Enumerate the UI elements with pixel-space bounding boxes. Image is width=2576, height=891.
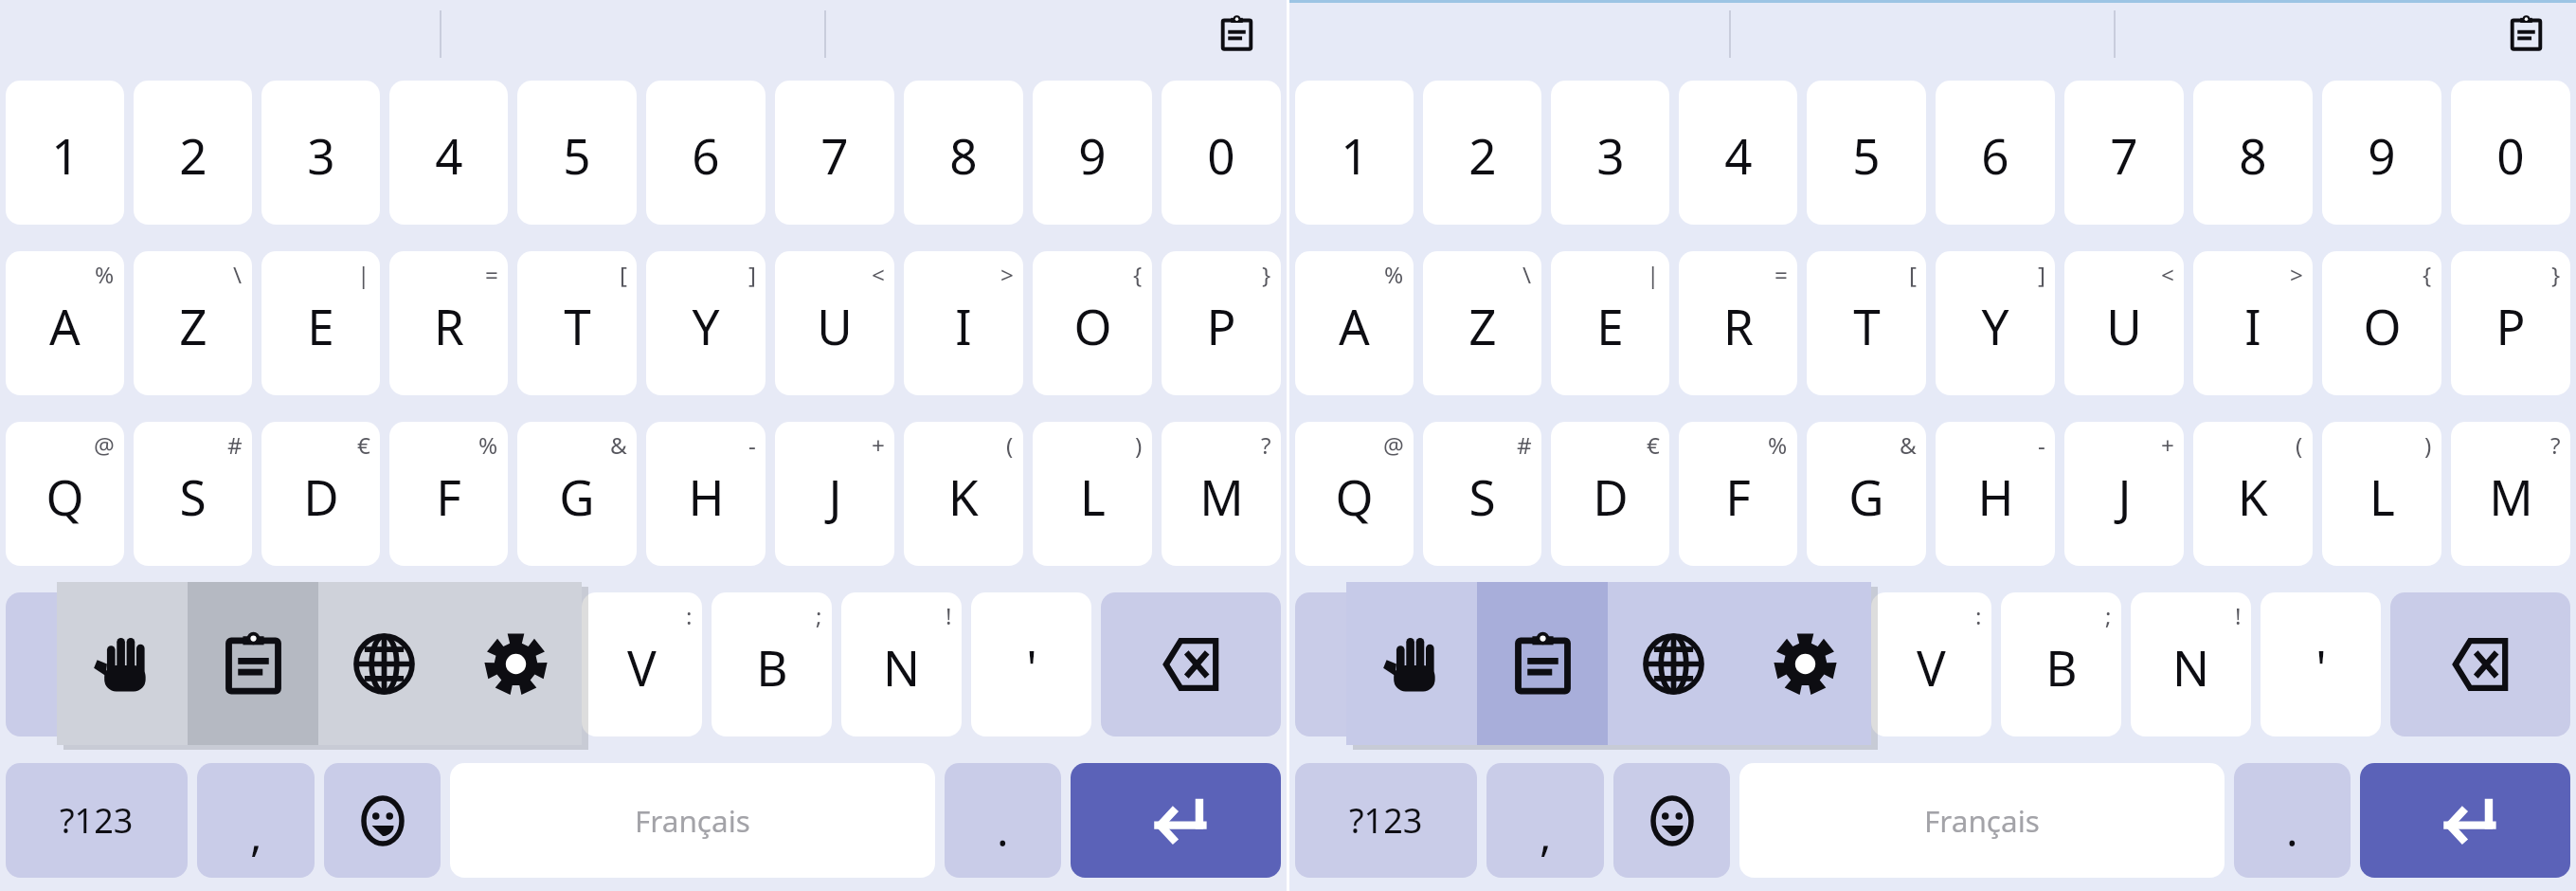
button[interactable]: 9 (2322, 81, 2441, 225)
button[interactable]: P (1162, 251, 1281, 395)
button[interactable]: 4 (389, 81, 508, 225)
button[interactable]: ' (971, 592, 1091, 736)
button[interactable]: M (2451, 422, 2570, 566)
button[interactable]: 3 (1551, 81, 1669, 225)
button[interactable]: Z (134, 251, 252, 395)
button[interactable]: I (904, 251, 1023, 395)
button[interactable]: H (1936, 422, 2055, 566)
button[interactable]: 8 (2193, 81, 2313, 225)
button[interactable]: Emoji (1613, 763, 1730, 878)
button[interactable]: O (2322, 251, 2441, 395)
button[interactable]: 7 (775, 81, 894, 225)
button[interactable]: V (582, 592, 702, 736)
button[interactable]: Q (6, 422, 124, 566)
button[interactable]: 1 (6, 81, 124, 225)
button[interactable]: Y (1936, 251, 2055, 395)
button[interactable]: Settings (450, 582, 582, 745)
button[interactable]: Languages (318, 582, 450, 745)
button[interactable]: F (1679, 422, 1797, 566)
button[interactable]: N (2131, 592, 2251, 736)
button[interactable]: Shift (1295, 592, 1474, 736)
button[interactable]: C (452, 592, 572, 736)
button[interactable]: Comma (1486, 763, 1604, 878)
button[interactable]: O (1033, 251, 1152, 395)
button[interactable]: Shift (6, 592, 185, 736)
button[interactable]: W (1484, 592, 1603, 736)
button[interactable]: K (2193, 422, 2313, 566)
button[interactable]: X (323, 592, 442, 736)
button[interactable]: X (1612, 592, 1732, 736)
button[interactable]: G (517, 422, 637, 566)
button[interactable]: G (1807, 422, 1926, 566)
button[interactable]: 6 (1936, 81, 2055, 225)
button[interactable]: Français (450, 763, 935, 878)
button[interactable]: T (517, 251, 637, 395)
button[interactable]: I (2193, 251, 2313, 395)
button[interactable]: ' (2261, 592, 2381, 736)
button[interactable]: W (194, 592, 314, 736)
button[interactable]: 7 (2064, 81, 2184, 225)
button[interactable]: Settings (1739, 582, 1871, 745)
button[interactable]: U (2064, 251, 2184, 395)
button[interactable]: Period (2234, 763, 2351, 878)
button[interactable]: F (389, 422, 508, 566)
button[interactable]: A (1295, 251, 1414, 395)
button[interactable]: One-handed mode (57, 582, 188, 745)
button[interactable]: Français (1739, 763, 2225, 878)
button[interactable]: Comma (197, 763, 315, 878)
button[interactable]: E (1551, 251, 1669, 395)
button[interactable]: J (775, 422, 894, 566)
button[interactable]: T (1807, 251, 1926, 395)
button[interactable]: ?123 (6, 763, 188, 878)
button[interactable]: 0 (1162, 81, 1281, 225)
button[interactable]: K (904, 422, 1023, 566)
button[interactable]: N (841, 592, 962, 736)
button[interactable]: B (2001, 592, 2121, 736)
button[interactable]: Period (945, 763, 1061, 878)
button[interactable]: 1 (1295, 81, 1414, 225)
button[interactable]: 4 (1679, 81, 1797, 225)
button[interactable]: ?123 (1295, 763, 1477, 878)
button[interactable]: 3 (261, 81, 380, 225)
button[interactable]: L (1033, 422, 1152, 566)
button[interactable]: H (646, 422, 766, 566)
button[interactable]: D (1551, 422, 1669, 566)
button[interactable]: 2 (134, 81, 252, 225)
button[interactable]: Enter (1071, 763, 1281, 878)
button[interactable]: 5 (517, 81, 637, 225)
button[interactable]: 0 (2451, 81, 2570, 225)
button[interactable]: S (134, 422, 252, 566)
button[interactable]: C (1741, 592, 1862, 736)
button[interactable]: L (2322, 422, 2441, 566)
button[interactable]: Clipboard (1477, 582, 1608, 745)
button[interactable]: Languages (1608, 582, 1739, 745)
button[interactable]: One-handed mode (1346, 582, 1477, 745)
button[interactable]: D (261, 422, 380, 566)
button[interactable]: Clipboard (1213, 9, 1261, 58)
button[interactable]: S (1423, 422, 1541, 566)
button[interactable]: Backspace (2390, 592, 2570, 736)
button[interactable]: 2 (1423, 81, 1541, 225)
button[interactable]: V (1871, 592, 1991, 736)
button[interactable]: A (6, 251, 124, 395)
button[interactable]: 9 (1033, 81, 1152, 225)
button[interactable]: M (1162, 422, 1281, 566)
button[interactable]: Clipboard (188, 582, 318, 745)
button[interactable]: R (389, 251, 508, 395)
button[interactable]: B (712, 592, 832, 736)
button[interactable]: R (1679, 251, 1797, 395)
button[interactable]: J (2064, 422, 2184, 566)
button[interactable]: Q (1295, 422, 1414, 566)
button[interactable]: 6 (646, 81, 766, 225)
button[interactable]: P (2451, 251, 2570, 395)
button[interactable]: 5 (1807, 81, 1926, 225)
button[interactable]: Backspace (1101, 592, 1281, 736)
button[interactable]: 8 (904, 81, 1023, 225)
button[interactable]: U (775, 251, 894, 395)
button[interactable]: Enter (2360, 763, 2570, 878)
button[interactable]: Z (1423, 251, 1541, 395)
button[interactable]: Emoji (324, 763, 441, 878)
button[interactable]: Y (646, 251, 766, 395)
button[interactable]: E (261, 251, 380, 395)
button[interactable]: Clipboard (2502, 9, 2550, 58)
